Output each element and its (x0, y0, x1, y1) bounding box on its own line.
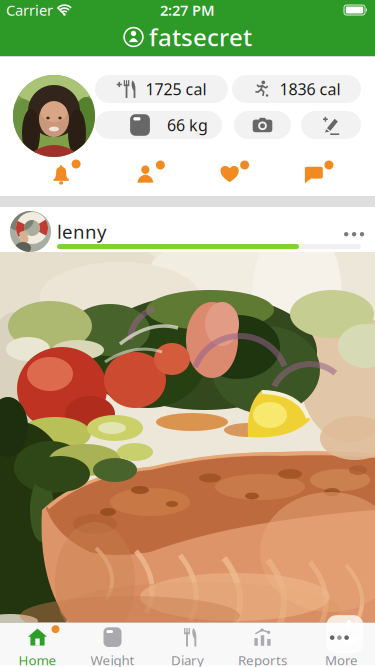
staticText: fatsecret (149, 21, 252, 53)
button[interactable]: 1725 cal (95, 75, 228, 103)
staticText: lenny (57, 219, 107, 244)
button[interactable] (301, 111, 361, 139)
staticText: Weight (90, 651, 134, 667)
button[interactable] (300, 627, 375, 667)
staticText (336, 651, 339, 667)
button[interactable]: Weight (75, 627, 150, 667)
button[interactable] (103, 161, 187, 187)
button[interactable] (19, 161, 103, 187)
button[interactable] (13, 75, 95, 157)
staticText: 1836 cal (279, 78, 340, 100)
staticText: Diary (171, 651, 204, 667)
staticText: Home (18, 651, 56, 667)
staticText: 66 kg (167, 114, 208, 136)
button[interactable] (272, 161, 356, 187)
button[interactable]: Reports (225, 627, 300, 667)
staticText: Reports (238, 651, 287, 667)
button[interactable]: 66 kg (95, 111, 222, 139)
button[interactable]: Home (0, 627, 75, 667)
button[interactable]: 1836 cal (232, 75, 361, 103)
button[interactable]: lenny (0, 207, 375, 252)
staticText: Carrier (6, 0, 53, 20)
staticText: 2:27 PM (160, 0, 215, 20)
button[interactable] (234, 111, 291, 139)
staticText: 1725 cal (145, 78, 206, 100)
button[interactable] (187, 161, 272, 187)
button[interactable]: Diary (150, 627, 225, 667)
staticText: More (325, 651, 358, 667)
